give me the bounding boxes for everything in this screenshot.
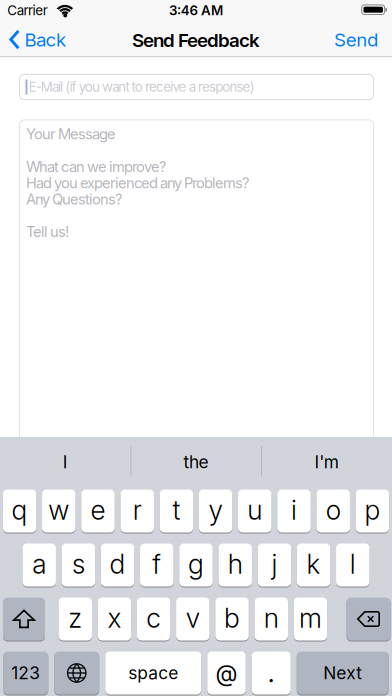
button[interactable]: Send [334,29,378,51]
staticText: I'm [315,452,339,472]
button[interactable]: s [62,543,95,586]
staticText: Send [334,29,378,51]
button[interactable]: l [336,543,369,586]
staticText: space [128,663,178,683]
button[interactable]: y [199,489,232,532]
button[interactable]: the [136,442,256,482]
button[interactable]: v [176,597,210,640]
staticText: . [268,658,275,688]
staticText: u [247,494,262,526]
button[interactable]: Delete [346,597,390,640]
staticText: l [350,548,356,580]
staticText: Your Message [26,125,116,143]
staticText: i [291,494,297,526]
button[interactable]: . [252,651,291,694]
staticText: a [32,548,46,580]
staticText: s [72,548,85,580]
staticText: e [90,494,105,526]
button[interactable]: e [81,489,115,532]
staticText: 123 [11,663,40,683]
staticText: j [271,548,277,580]
staticText: g [188,548,204,580]
button[interactable]: E-Mail (if you want to receive a respons… [19,74,373,100]
staticText: I [63,452,68,472]
staticText: x [107,602,121,634]
staticText: b [224,602,240,634]
staticText: t [172,494,180,526]
staticText: Carrier [7,2,48,18]
staticText: m [299,602,322,634]
button[interactable]: f [140,543,174,586]
staticText: What can we improve? [26,158,166,175]
button[interactable]: d [101,543,134,586]
staticText: y [209,494,223,526]
button[interactable]: @ [207,651,246,694]
button[interactable]: o [316,489,350,532]
staticText: E-Mail (if you want to receive a respons… [29,79,255,95]
button[interactable]: j [258,543,291,586]
staticText: Send Feedback [132,29,260,51]
staticText: v [186,602,200,634]
button[interactable]: u [238,489,271,532]
button[interactable]: 123 [3,651,48,694]
button[interactable]: k [297,543,330,586]
button[interactable]: b [215,597,249,640]
button[interactable]: Next keyboard [54,651,99,694]
staticText: w [48,494,69,526]
button[interactable]: q [3,489,36,532]
staticText: h [228,548,243,580]
button[interactable]: a [22,543,56,586]
button[interactable]: h [218,543,252,586]
staticText: d [110,548,126,580]
button[interactable]: r [120,489,154,532]
staticText: z [68,602,82,634]
staticText: Tell us! [26,223,69,240]
staticText: Next [323,663,362,683]
button[interactable]: g [179,543,213,586]
staticText: q [12,494,28,526]
staticText: o [326,494,341,526]
staticText: @ [215,660,237,686]
button[interactable]: Back [10,29,66,51]
staticText: Back [25,29,66,51]
button[interactable]: t [160,489,193,532]
button[interactable]: x [98,597,131,640]
button[interactable]: p [356,489,389,532]
button[interactable]: I'm [267,442,387,482]
button[interactable]: i [277,489,311,532]
staticText: f [152,548,161,580]
staticText: Had you experienced any Problems? [26,174,249,191]
staticText: c [146,602,161,634]
staticText: n [264,602,279,634]
button[interactable]: w [42,489,75,532]
button[interactable]: Next [297,651,389,694]
staticText: k [307,548,321,580]
button[interactable]: z [58,597,92,640]
staticText: 3:46 AM [169,2,223,18]
button[interactable]: c [137,597,170,640]
button[interactable]: m [294,597,327,640]
staticText: r [133,494,142,526]
button[interactable]: n [254,597,288,640]
button[interactable]: Your Message [19,120,373,452]
staticText: the [183,452,209,472]
staticText: Any Questions? [26,190,122,208]
button[interactable]: Shift [3,597,45,640]
staticText: p [364,494,380,526]
button[interactable]: space [105,651,201,694]
button[interactable]: I [5,442,125,482]
